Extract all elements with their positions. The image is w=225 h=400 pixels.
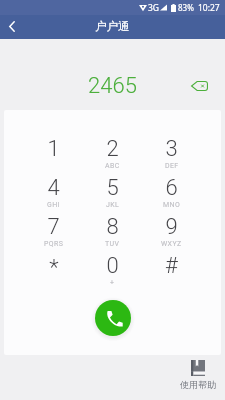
- button[interactable]: Call: [95, 300, 131, 336]
- staticText: 8: [106, 214, 119, 240]
- staticText: 2: [106, 136, 119, 162]
- staticText: TUV: [105, 240, 120, 248]
- staticText: 7: [47, 214, 60, 240]
- button[interactable]: 使用帮助: [173, 357, 222, 390]
- staticText: 使用帮助: [180, 379, 216, 390]
- staticText: WXYZ: [161, 240, 182, 248]
- staticText: 0: [106, 253, 119, 279]
- button[interactable]: #: [142, 248, 201, 287]
- staticText: 6: [165, 175, 178, 201]
- staticText: 4: [47, 175, 60, 201]
- staticText: *: [49, 255, 59, 281]
- button[interactable]: 5: [83, 170, 142, 209]
- button[interactable]: 3: [142, 131, 201, 170]
- button[interactable]: 9: [142, 209, 201, 248]
- staticText: 2465: [0, 73, 225, 99]
- staticText: +: [110, 279, 115, 287]
- staticText: 3G: [148, 2, 160, 14]
- button[interactable]: 2: [83, 131, 142, 170]
- staticText: 10:27: [198, 2, 220, 14]
- staticText: GHI: [47, 201, 60, 209]
- button[interactable]: 6: [142, 170, 201, 209]
- button[interactable]: 0: [83, 248, 142, 287]
- button[interactable]: Backspace: [186, 76, 212, 96]
- staticText: #: [165, 253, 178, 279]
- staticText: 1: [47, 136, 60, 162]
- staticText: ABC: [105, 162, 120, 170]
- staticText: MNO: [163, 201, 181, 209]
- staticText: PQRS: [44, 240, 64, 248]
- button[interactable]: 1: [24, 131, 83, 170]
- button[interactable]: 8: [83, 209, 142, 248]
- staticText: 户户通: [95, 19, 130, 33]
- staticText: 9: [165, 214, 178, 240]
- staticText: JKL: [106, 201, 120, 209]
- staticText: 83%: [178, 2, 194, 13]
- button[interactable]: Back: [0, 15, 23, 39]
- button[interactable]: 4: [24, 170, 83, 209]
- staticText: 5: [106, 175, 119, 201]
- button[interactable]: *: [24, 248, 83, 287]
- staticText: 3: [165, 136, 178, 162]
- button[interactable]: 7: [24, 209, 83, 248]
- staticText: DEF: [165, 162, 179, 170]
